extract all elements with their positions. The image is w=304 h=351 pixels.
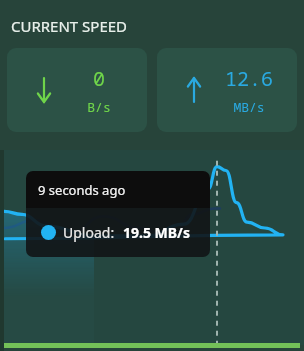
staticText: B/s (87, 98, 111, 116)
staticText: 0 (93, 65, 105, 92)
other: Download (35, 76, 53, 104)
staticText: 9 seconds ago (38, 181, 126, 199)
staticText: 19.5 MB/s (123, 223, 190, 242)
staticText: MB/s (233, 98, 265, 116)
staticText: CURRENT SPEED (11, 16, 128, 36)
staticText: 12.6 (225, 65, 273, 92)
button[interactable]: Upload (157, 48, 297, 132)
other: Upload (185, 76, 203, 104)
button[interactable]: Download (7, 48, 147, 132)
button[interactable]: 9 seconds ago (26, 171, 210, 257)
staticText: Upload: (63, 223, 115, 242)
